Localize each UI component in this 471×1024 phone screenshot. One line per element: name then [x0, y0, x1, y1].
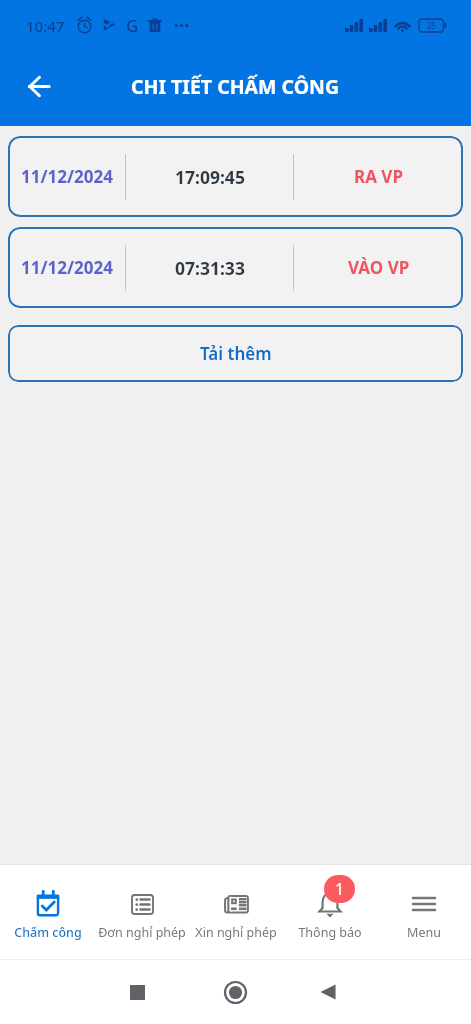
staticText: RA VP: [354, 165, 403, 188]
button[interactable]: 1: [283, 865, 377, 959]
staticText: 07:31:33: [175, 256, 245, 280]
button[interactable]: Chấm công: [0, 865, 95, 959]
staticText: 11/12/2024: [21, 256, 113, 279]
staticText: Thông báo: [298, 924, 362, 941]
staticText: CHI TIẾT CHẤM CÔNG: [131, 73, 340, 100]
staticText: G: [126, 14, 139, 37]
button[interactable]: Đơn nghỉ phép: [95, 865, 189, 959]
staticText: Đơn nghỉ phép: [98, 924, 186, 941]
button[interactable]: Back: [308, 972, 348, 1012]
button[interactable]: Xin nghỉ phép: [189, 865, 283, 959]
staticText: 1: [335, 878, 345, 900]
button[interactable]: Recents: [117, 972, 157, 1012]
staticText: 10:47: [26, 16, 65, 36]
button[interactable]: 11/12/2024: [8, 227, 463, 308]
button[interactable]: Menu: [377, 865, 471, 959]
staticText: 25: [427, 20, 437, 31]
staticText: Chấm công: [14, 924, 82, 941]
button[interactable]: Back: [17, 64, 61, 108]
staticText: VÀO VP: [348, 256, 410, 279]
staticText: Tải thêm: [200, 342, 272, 365]
button[interactable]: Home: [215, 972, 255, 1012]
button[interactable]: Tải thêm: [8, 325, 463, 382]
staticText: Xin nghỉ phép: [195, 924, 277, 941]
staticText: 11/12/2024: [21, 165, 113, 188]
staticText: 17:09:45: [175, 165, 245, 189]
staticText: Menu: [407, 924, 441, 941]
button[interactable]: 11/12/2024: [8, 136, 463, 217]
